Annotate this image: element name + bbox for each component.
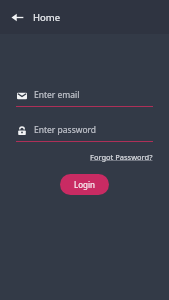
staticText: Enter password [34, 124, 97, 136]
button[interactable]: Back [9, 9, 25, 25]
other: Email [16, 90, 27, 101]
button[interactable]: Password [16, 124, 153, 142]
staticText: Forgot Password? [90, 152, 153, 162]
other: Password [16, 125, 27, 136]
staticText: Enter email [34, 89, 80, 101]
button[interactable]: Login [60, 174, 109, 195]
staticText: Home [33, 11, 61, 24]
staticText: Login [74, 179, 95, 190]
button[interactable]: Email [16, 89, 153, 107]
button[interactable]: Forgot Password? [90, 151, 153, 163]
